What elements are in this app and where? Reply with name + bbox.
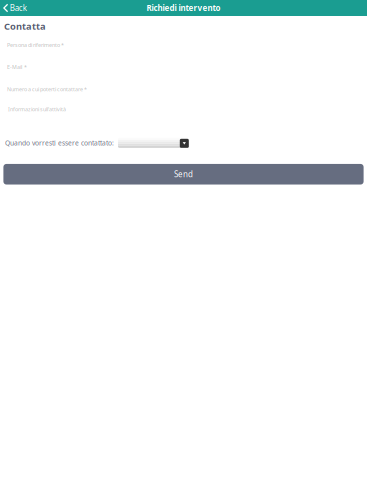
button[interactable]: Send — [3, 164, 364, 184]
button[interactable]: Back — [0, 0, 27, 17]
staticText: Quando vorresti essere contattato: — [5, 138, 114, 147]
staticText: Back — [10, 3, 27, 13]
button[interactable]: Informazioni sull'attività — [0, 106, 367, 113]
staticText: Informazioni sull'attività — [8, 106, 66, 113]
staticText: E-Mail * — [7, 63, 27, 71]
button[interactable]: Quando vorresti essere contattato — [118, 138, 189, 148]
staticText: Send — [174, 169, 193, 179]
button[interactable]: E-Mail * — [0, 63, 367, 71]
button[interactable]: Numero a cui poterti contattare * — [0, 86, 367, 93]
staticText: Richiedi intervento — [146, 3, 220, 13]
button[interactable]: Persona di riferimento * — [0, 41, 367, 48]
staticText: Persona di riferimento * — [7, 41, 64, 48]
staticText: Contatta — [4, 20, 46, 32]
staticText: Numero a cui poterti contattare * — [7, 86, 87, 93]
